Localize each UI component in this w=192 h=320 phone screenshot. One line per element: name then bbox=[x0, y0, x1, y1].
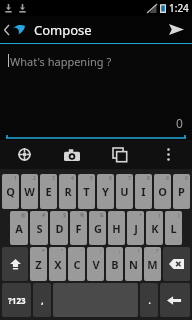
button[interactable]: V bbox=[87, 247, 104, 281]
staticText: , bbox=[41, 295, 44, 306]
staticText: R bbox=[64, 184, 72, 199]
staticText: F bbox=[75, 221, 82, 236]
button[interactable]: More options bbox=[144, 140, 192, 169]
staticText: E bbox=[45, 184, 52, 199]
staticText: 1:24 bbox=[169, 1, 189, 15]
button[interactable]: R bbox=[59, 174, 76, 209]
button[interactable]: Q bbox=[2, 174, 19, 209]
button[interactable]: O bbox=[154, 174, 171, 209]
button[interactable]: Enter bbox=[160, 283, 190, 317]
button[interactable]: Location bbox=[0, 140, 48, 169]
staticText: U bbox=[120, 184, 129, 199]
button[interactable]: N bbox=[125, 247, 142, 281]
button[interactable]: M bbox=[144, 247, 161, 281]
staticText: L bbox=[170, 221, 177, 236]
staticText: $ bbox=[63, 212, 66, 219]
staticText: ' bbox=[81, 248, 83, 255]
staticText: B bbox=[111, 257, 119, 272]
button[interactable]: F bbox=[70, 211, 87, 245]
button[interactable]: U bbox=[116, 174, 133, 209]
button[interactable]: I bbox=[135, 174, 152, 209]
staticText: T bbox=[83, 184, 90, 199]
staticText: S bbox=[36, 221, 43, 236]
staticText: + bbox=[139, 212, 142, 219]
staticText: ; bbox=[119, 248, 121, 255]
staticText: I bbox=[141, 184, 146, 199]
staticText: Compose bbox=[34, 21, 92, 39]
staticText: 0 bbox=[185, 175, 188, 182]
staticText: V bbox=[92, 257, 100, 272]
staticText: * bbox=[42, 248, 45, 255]
button[interactable]: E bbox=[40, 174, 57, 209]
button[interactable]: A bbox=[10, 211, 28, 245]
staticText: @ bbox=[21, 212, 26, 219]
staticText: 0 bbox=[176, 115, 183, 131]
staticText: - bbox=[121, 212, 123, 219]
button[interactable]: D bbox=[50, 211, 68, 245]
staticText: J bbox=[134, 221, 138, 236]
staticText: N bbox=[129, 257, 138, 272]
staticText: ) bbox=[178, 212, 180, 219]
staticText: ! bbox=[138, 248, 140, 255]
button[interactable]: Backspace bbox=[163, 247, 190, 281]
staticText: ? bbox=[156, 248, 159, 255]
staticText: 5 bbox=[90, 175, 93, 182]
button[interactable]: Gallery bbox=[96, 140, 144, 169]
button[interactable]: S bbox=[30, 211, 48, 245]
staticText: % bbox=[80, 212, 85, 219]
staticText: D bbox=[55, 221, 64, 236]
staticText: & bbox=[100, 212, 104, 219]
button[interactable]: , bbox=[33, 283, 51, 317]
button[interactable]: T bbox=[78, 174, 95, 209]
staticText: Y bbox=[102, 184, 109, 199]
button[interactable]: . bbox=[140, 283, 158, 317]
button[interactable]: Back bbox=[0, 20, 30, 39]
staticText: . bbox=[148, 295, 151, 306]
button[interactable]: K bbox=[146, 211, 163, 245]
button[interactable]: C bbox=[68, 247, 85, 281]
button[interactable]: B bbox=[106, 247, 123, 281]
staticText: 2 bbox=[33, 175, 36, 182]
staticText: H bbox=[112, 221, 121, 236]
staticText: # bbox=[42, 212, 46, 219]
button[interactable]: H bbox=[108, 211, 125, 245]
staticText: ( bbox=[159, 212, 161, 219]
button[interactable]: W bbox=[21, 174, 38, 209]
staticText: Q bbox=[6, 184, 15, 199]
staticText: X bbox=[54, 257, 62, 272]
staticText: K bbox=[151, 221, 159, 236]
button[interactable]: Y bbox=[97, 174, 114, 209]
staticText: 8 bbox=[147, 175, 150, 182]
button[interactable]: Send bbox=[161, 18, 192, 41]
staticText: What's happening ? bbox=[10, 54, 112, 69]
button[interactable]: L bbox=[165, 211, 182, 245]
staticText: : bbox=[100, 248, 102, 255]
staticText: M bbox=[147, 257, 158, 272]
staticText: 9 bbox=[166, 175, 169, 182]
staticText: Z bbox=[35, 257, 42, 272]
staticText: A bbox=[15, 221, 23, 236]
button[interactable]: P bbox=[173, 174, 190, 209]
staticText: 7 bbox=[128, 175, 131, 182]
staticText: P bbox=[178, 184, 185, 199]
button[interactable]: Symbols bbox=[2, 283, 31, 317]
button[interactable]: Camera bbox=[48, 140, 96, 169]
button[interactable]: G bbox=[89, 211, 106, 245]
staticText: 1 bbox=[14, 175, 17, 182]
button[interactable]: Shift bbox=[2, 247, 28, 281]
staticText: O bbox=[158, 184, 167, 199]
button[interactable]: Z bbox=[30, 247, 47, 281]
button[interactable]: J bbox=[127, 211, 144, 245]
staticText: 6 bbox=[109, 175, 112, 182]
button[interactable]: X bbox=[49, 247, 66, 281]
staticText: 4 bbox=[71, 175, 74, 182]
staticText: G bbox=[94, 221, 102, 236]
staticText: ?123 bbox=[8, 295, 26, 306]
staticText: " bbox=[61, 248, 64, 255]
staticText: C bbox=[73, 257, 81, 272]
staticText: 3 bbox=[52, 175, 55, 182]
staticText: W bbox=[24, 184, 35, 199]
